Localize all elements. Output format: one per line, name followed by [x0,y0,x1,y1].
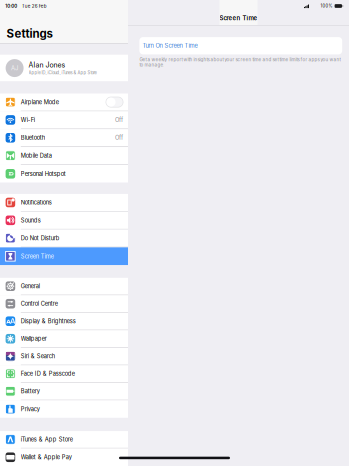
staticText: Control Centre [21,300,58,307]
staticText: Tue 26 Feb [22,3,47,9]
staticText: Off [115,116,123,123]
button[interactable]: Siri & Search [0,348,128,365]
staticText: Apple ID, iCloud, iTunes & App Store [29,70,97,75]
button[interactable]: Do Not Disturb [0,230,128,247]
staticText: Settings [6,27,52,41]
button[interactable]: Display & Brightness [0,313,128,330]
button[interactable]: Sounds [0,212,128,229]
button[interactable]: Wallpaper [0,330,128,348]
staticText: Notifications [21,199,52,206]
staticText: Turn On Screen Time [142,42,197,49]
staticText: Wallet & Apple Pay [21,454,72,461]
button[interactable]: Personal Hotspot [0,165,128,183]
button[interactable]: Battery [0,383,128,400]
button[interactable]: AJ [0,55,128,81]
button[interactable]: Screen Time [0,247,128,265]
staticText: Sounds [21,217,41,224]
staticText: Bluetooth [21,134,45,141]
staticText: Mobile Data [21,152,52,159]
button[interactable]: Privacy [0,400,128,418]
staticText: 100% [321,3,333,8]
button[interactable]: Mobile Data [0,147,128,165]
staticText: General [21,283,40,290]
staticText: Airplane Mode [21,99,59,105]
button[interactable]: Airplane Mode [0,93,128,111]
staticText: Screen Time [21,253,54,260]
staticText: Personal Hotspot [21,170,66,177]
staticText: Do Not Disturb [21,235,60,242]
button[interactable]: iTunes & App Store [0,431,128,448]
button[interactable]: Notifications [0,194,128,212]
button[interactable]: Control Centre [0,295,128,313]
staticText: Siri & Search [21,353,55,360]
button[interactable]: Bluetooth [0,129,128,147]
staticText: Wallpaper [21,335,47,342]
button[interactable]: Wallet & Apple Pay [0,448,128,466]
staticText: Wi-Fi [21,116,35,123]
button[interactable]: Turn On Screen Time [139,37,342,54]
staticText: Screen Time [219,14,257,22]
staticText: Battery [21,388,40,395]
staticText: Display & Brightness [21,318,76,325]
staticText: 10:00 [5,3,17,9]
staticText: Privacy [21,406,40,413]
staticText: Face ID & Passcode [21,370,75,377]
staticText: AJ [11,64,18,72]
staticText: Get a weekly report with insights about … [139,57,340,68]
button[interactable]: Face ID & Passcode [0,365,128,383]
button[interactable]: General [0,278,128,295]
staticText: Off [115,134,123,141]
button[interactable]: Wi-Fi [0,111,128,129]
staticText: Alan Jones [29,61,66,69]
staticText: iTunes & App Store [21,436,73,443]
